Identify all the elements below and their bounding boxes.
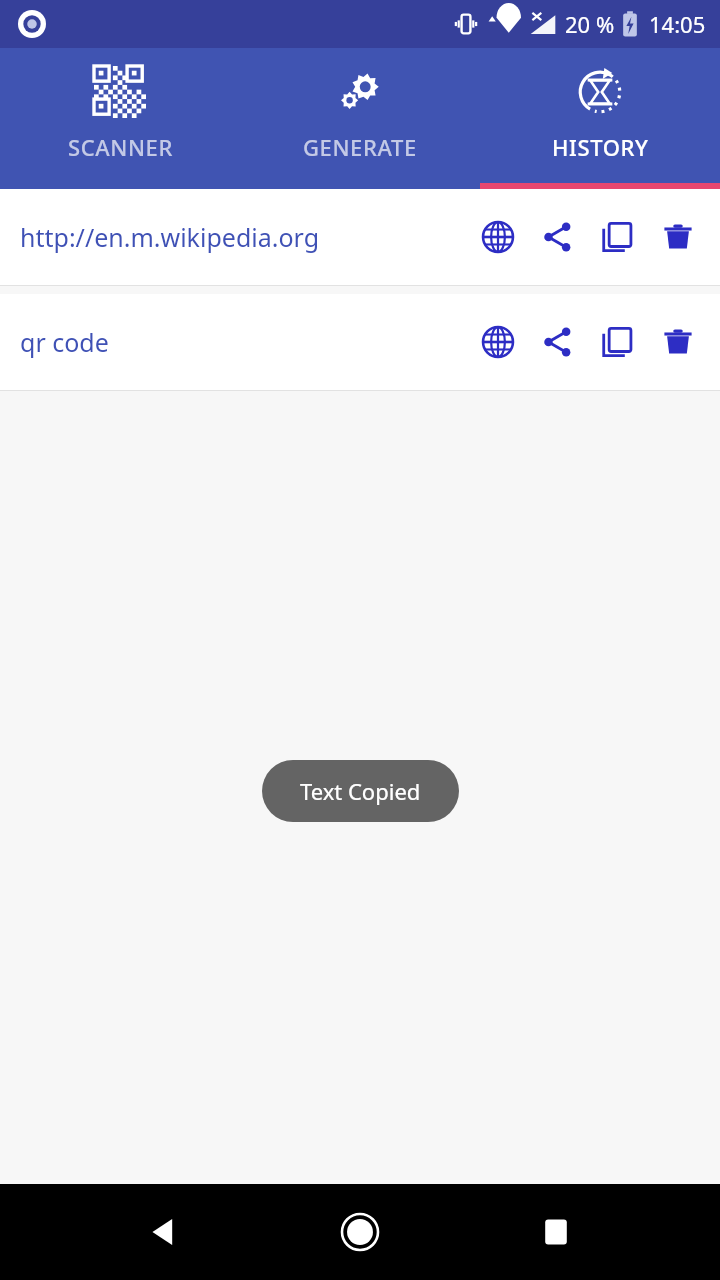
button[interactable]: Home [328,1200,392,1264]
staticText: SCANNER [68,132,173,162]
button[interactable]: Open in browser [476,320,520,364]
button[interactable]: GENERATE [240,48,480,162]
button[interactable]: Delete [656,320,700,364]
button[interactable]: Share [536,215,580,259]
button[interactable]: Open in browser [476,215,520,259]
staticText: 20 % [565,9,615,39]
button[interactable]: Copy [596,215,640,259]
button[interactable]: Delete [656,215,700,259]
button[interactable]: HISTORY [480,48,720,162]
staticText: http://en.m.wikipedia.org [20,220,476,254]
staticText: qr code [20,325,476,359]
button[interactable]: Copy [596,320,640,364]
button[interactable]: SCANNER [0,48,240,162]
button[interactable]: Recent apps [524,1200,588,1264]
staticText: 14:05 [649,9,706,39]
button[interactable]: Back [132,1200,196,1264]
staticText: GENERATE [303,132,417,162]
button[interactable]: Share [536,320,580,364]
button[interactable]: qr code [0,294,720,390]
staticText: Text Copied [300,776,421,806]
button[interactable]: http://en.m.wikipedia.org [0,189,720,285]
staticText: HISTORY [552,132,649,162]
